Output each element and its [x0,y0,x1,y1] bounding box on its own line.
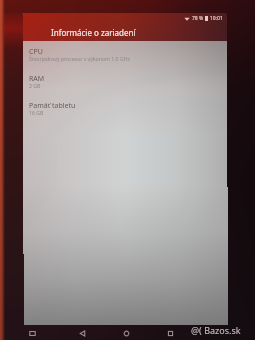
staticText: 16 GB [29,109,44,116]
staticText: 2 GB [29,82,41,89]
button[interactable]: Back [78,329,87,338]
staticText: RAM [29,74,45,84]
staticText: CPU [29,47,43,57]
button[interactable]: Recent apps [166,329,175,338]
button[interactable]: CPU [29,43,226,70]
button[interactable]: Pamäť tabletu [29,97,226,124]
staticText: Pamäť tabletu [29,101,76,111]
staticText: 10:01 [210,15,223,22]
staticText: Informácie o zariadení [51,27,136,38]
button[interactable]: RAM [29,70,226,97]
button[interactable]: Home [122,329,131,338]
staticText: Štvorjadrový procesor s výkonom 1.0 GHz [29,55,130,62]
staticText: @( Bazos.sk [191,324,241,336]
button[interactable]: Screenshot [28,329,37,338]
staticText: 78 % [192,15,204,22]
